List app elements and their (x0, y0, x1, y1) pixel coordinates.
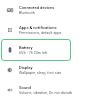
staticText: Connected devices (19, 5, 55, 10)
staticText: Permissions, default apps (19, 31, 62, 35)
button[interactable]: Connected devices (0, 0, 99, 20)
button[interactable]: Battery (0, 40, 99, 60)
staticText: Battery (19, 45, 33, 50)
staticText: Display (19, 65, 33, 70)
staticText: 65% - 7h 23m left (19, 51, 48, 55)
staticText: Sound (19, 85, 31, 90)
staticText: Apps & notifications (19, 25, 57, 30)
button[interactable]: Apps & notifications (0, 20, 99, 40)
staticText: Volume, vibration, Do not disturb (19, 91, 73, 95)
button[interactable]: Display (0, 60, 99, 80)
staticText: Bluetooth (19, 11, 35, 15)
button[interactable]: Sound (0, 80, 99, 100)
staticText: Wallpaper, sleep, font size (19, 71, 62, 75)
